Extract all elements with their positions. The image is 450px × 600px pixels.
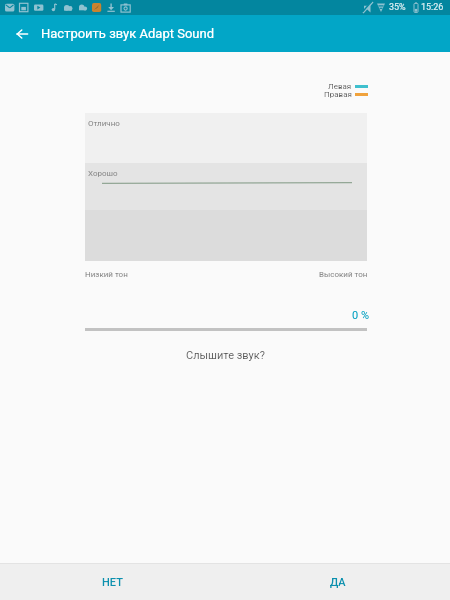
staticText: 15:26: [421, 2, 444, 13]
staticText: Правая: [324, 90, 352, 99]
staticText: ДА: [330, 576, 346, 589]
staticText: Слышите звук?: [186, 349, 265, 362]
button[interactable]: НЕТ: [0, 564, 225, 600]
staticText: 0 %: [352, 309, 369, 322]
button[interactable]: Back: [9, 21, 35, 47]
staticText: НЕТ: [102, 576, 123, 589]
staticText: Настроить звук Adapt Sound: [41, 26, 214, 41]
staticText: Хорошо: [88, 169, 118, 178]
button[interactable]: Volume: [85, 325, 367, 333]
staticText: Левая: [328, 82, 352, 91]
staticText: Отлично: [88, 119, 120, 128]
button[interactable]: ДА: [225, 564, 450, 600]
staticText: 35%: [389, 2, 406, 13]
staticText: Низкий тон: [85, 270, 128, 279]
staticText: Высокий тон: [319, 270, 368, 279]
